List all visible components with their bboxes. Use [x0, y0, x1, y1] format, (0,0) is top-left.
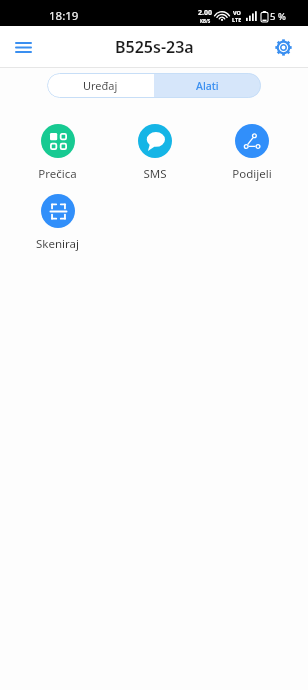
- staticText: 18:19: [49, 8, 79, 24]
- button[interactable]: Menu: [7, 31, 39, 63]
- staticText: SMS: [143, 166, 167, 182]
- button[interactable]: Prečica: [9, 124, 106, 182]
- staticText: 5 %: [270, 10, 286, 23]
- staticText: VO: [233, 9, 241, 16]
- staticText: Prečica: [38, 166, 77, 182]
- button[interactable]: Skeniraj: [9, 194, 106, 252]
- staticText: 2.00: [198, 8, 212, 18]
- button[interactable]: Podijeli: [203, 124, 300, 182]
- button[interactable]: SMS: [106, 124, 203, 182]
- staticText: Alati: [196, 79, 219, 93]
- button[interactable]: Uređaj: [47, 73, 154, 98]
- staticText: KB/S: [200, 18, 211, 24]
- staticText: LTE: [232, 16, 242, 23]
- staticText: Podijeli: [232, 166, 272, 182]
- staticText: Uređaj: [83, 78, 118, 93]
- button[interactable]: Alati: [154, 73, 261, 98]
- staticText: B525s-23a: [115, 36, 194, 58]
- button[interactable]: Settings: [267, 31, 299, 63]
- staticText: Skeniraj: [36, 236, 79, 252]
